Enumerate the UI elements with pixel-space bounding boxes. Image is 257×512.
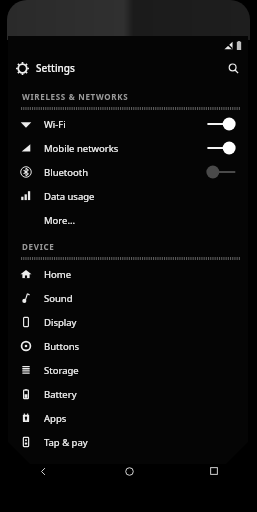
button[interactable]: Settings: [8, 61, 75, 75]
staticText: Settings: [36, 61, 75, 75]
other: Off: [204, 163, 238, 181]
button[interactable]: Display: [8, 310, 248, 334]
button[interactable]: Sound: [8, 286, 248, 310]
staticText: Buttons: [44, 340, 80, 353]
staticText: DEVICE: [22, 241, 55, 252]
button[interactable]: Bluetooth: [8, 160, 248, 184]
other: On: [204, 115, 238, 133]
button[interactable]: Buttons: [8, 334, 248, 358]
button[interactable]: Apps: [8, 406, 248, 430]
button[interactable]: Battery: [8, 382, 248, 406]
staticText: Apps: [44, 412, 67, 425]
staticText: Home: [44, 268, 72, 281]
staticText: Tap & pay: [44, 436, 88, 449]
staticText: Data usage: [44, 190, 95, 203]
button[interactable]: Mobile networks: [8, 136, 248, 160]
staticText: Mobile networks: [44, 142, 119, 155]
button[interactable]: Tap & pay: [8, 430, 248, 454]
button[interactable]: Back: [30, 460, 56, 482]
staticText: Storage: [44, 364, 79, 377]
staticText: WIRELESS & NETWORKS: [22, 91, 129, 102]
other: On: [204, 139, 238, 157]
staticText: Display: [44, 316, 77, 329]
button[interactable]: Recent apps: [201, 460, 227, 482]
staticText: Bluetooth: [44, 166, 89, 179]
staticText: Wi-Fi: [44, 118, 66, 131]
button[interactable]: Wi-Fi: [8, 112, 248, 136]
staticText: More...: [44, 214, 76, 227]
button[interactable]: Search: [218, 54, 248, 82]
button[interactable]: More...: [8, 208, 248, 232]
staticText: Battery: [44, 388, 77, 401]
button[interactable]: Home: [8, 262, 248, 286]
button[interactable]: Storage: [8, 358, 248, 382]
button[interactable]: Home: [116, 460, 142, 482]
staticText: Sound: [44, 292, 73, 305]
button[interactable]: Data usage: [8, 184, 248, 208]
